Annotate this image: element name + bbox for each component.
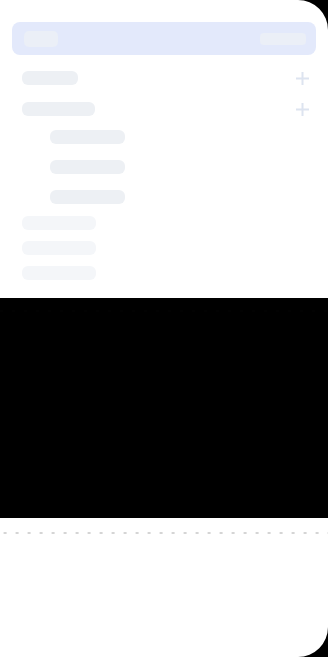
button[interactable] (0, 186, 328, 208)
button[interactable]: Add (286, 98, 318, 120)
button[interactable]: Add (286, 67, 318, 89)
button[interactable]: Add (0, 67, 328, 89)
button[interactable] (12, 22, 316, 55)
button[interactable]: Add (0, 98, 328, 120)
button[interactable] (0, 126, 328, 148)
button[interactable] (0, 237, 328, 259)
button[interactable] (0, 156, 328, 178)
button[interactable] (0, 262, 328, 284)
button[interactable] (0, 212, 328, 234)
